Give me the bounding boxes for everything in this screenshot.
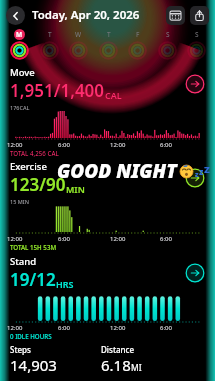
staticText: W [75,30,82,39]
staticText: CAL [105,89,122,101]
staticText: z [199,166,204,178]
button[interactable]: W [65,29,91,60]
staticText: 12:00 [7,235,23,243]
staticText: 123/90 [10,173,66,196]
staticText: 12:00 [110,141,126,149]
button[interactable]: T [95,29,121,60]
button[interactable]: S [183,29,209,60]
staticText: 12:00 [110,324,126,332]
staticText: F [136,30,140,39]
staticText: TOTAL 15H 53M [10,243,57,251]
staticText: Today, Apr 20, 2026 [32,7,140,23]
staticText: Exercise [10,160,47,173]
button[interactable]: Share [190,6,209,25]
staticText: T [48,30,52,39]
staticText: TOTAL 4,256 CAL [10,149,59,157]
button[interactable]: Distance [101,344,205,375]
staticText: 6:00 [58,141,70,149]
button[interactable]: T [36,29,62,60]
staticText: 6:00 [160,141,172,149]
button[interactable]: Steps [10,344,101,375]
staticText: 6:00 [58,324,70,332]
staticText: Steps [10,344,31,355]
staticText: 6:00 [160,235,172,243]
staticText: 6:00 [160,324,172,332]
staticText: M [16,30,23,39]
staticText: Distance [101,344,135,355]
staticText: 0 IDLE HOURS [10,332,52,340]
staticText: Stand [10,255,37,268]
button[interactable]: Show details [185,74,205,94]
button[interactable]: Show details [185,263,205,283]
button[interactable]: F [124,29,150,60]
button[interactable]: Calendar [166,6,185,25]
button[interactable]: S [154,29,180,60]
staticText: 6:00 [58,235,70,243]
staticText: MIN [66,183,85,195]
staticText: S [195,30,199,39]
staticText: 176CAL [10,104,30,111]
button[interactable]: M [6,29,32,60]
staticText: 12:00 [7,324,23,332]
staticText: 12:00 [110,235,126,243]
staticText: 1,951/1,400 [10,79,105,102]
staticText: S [166,30,170,39]
staticText: Move [10,66,35,79]
staticText: 15 MIN [10,198,29,205]
staticText: z [195,170,199,180]
staticText: 19/12 [10,268,56,291]
button[interactable]: Back [6,6,25,25]
staticText: GOOD NIGHT [57,158,177,184]
button[interactable]: Show details [185,168,205,188]
staticText: MI [131,362,142,374]
staticText: Z [204,163,210,176]
staticText: 14,903 [10,355,57,375]
staticText: 6.18 [101,355,131,375]
staticText: 12:00 [7,141,23,149]
staticText: HRS [56,278,74,290]
staticText: T [107,30,111,39]
